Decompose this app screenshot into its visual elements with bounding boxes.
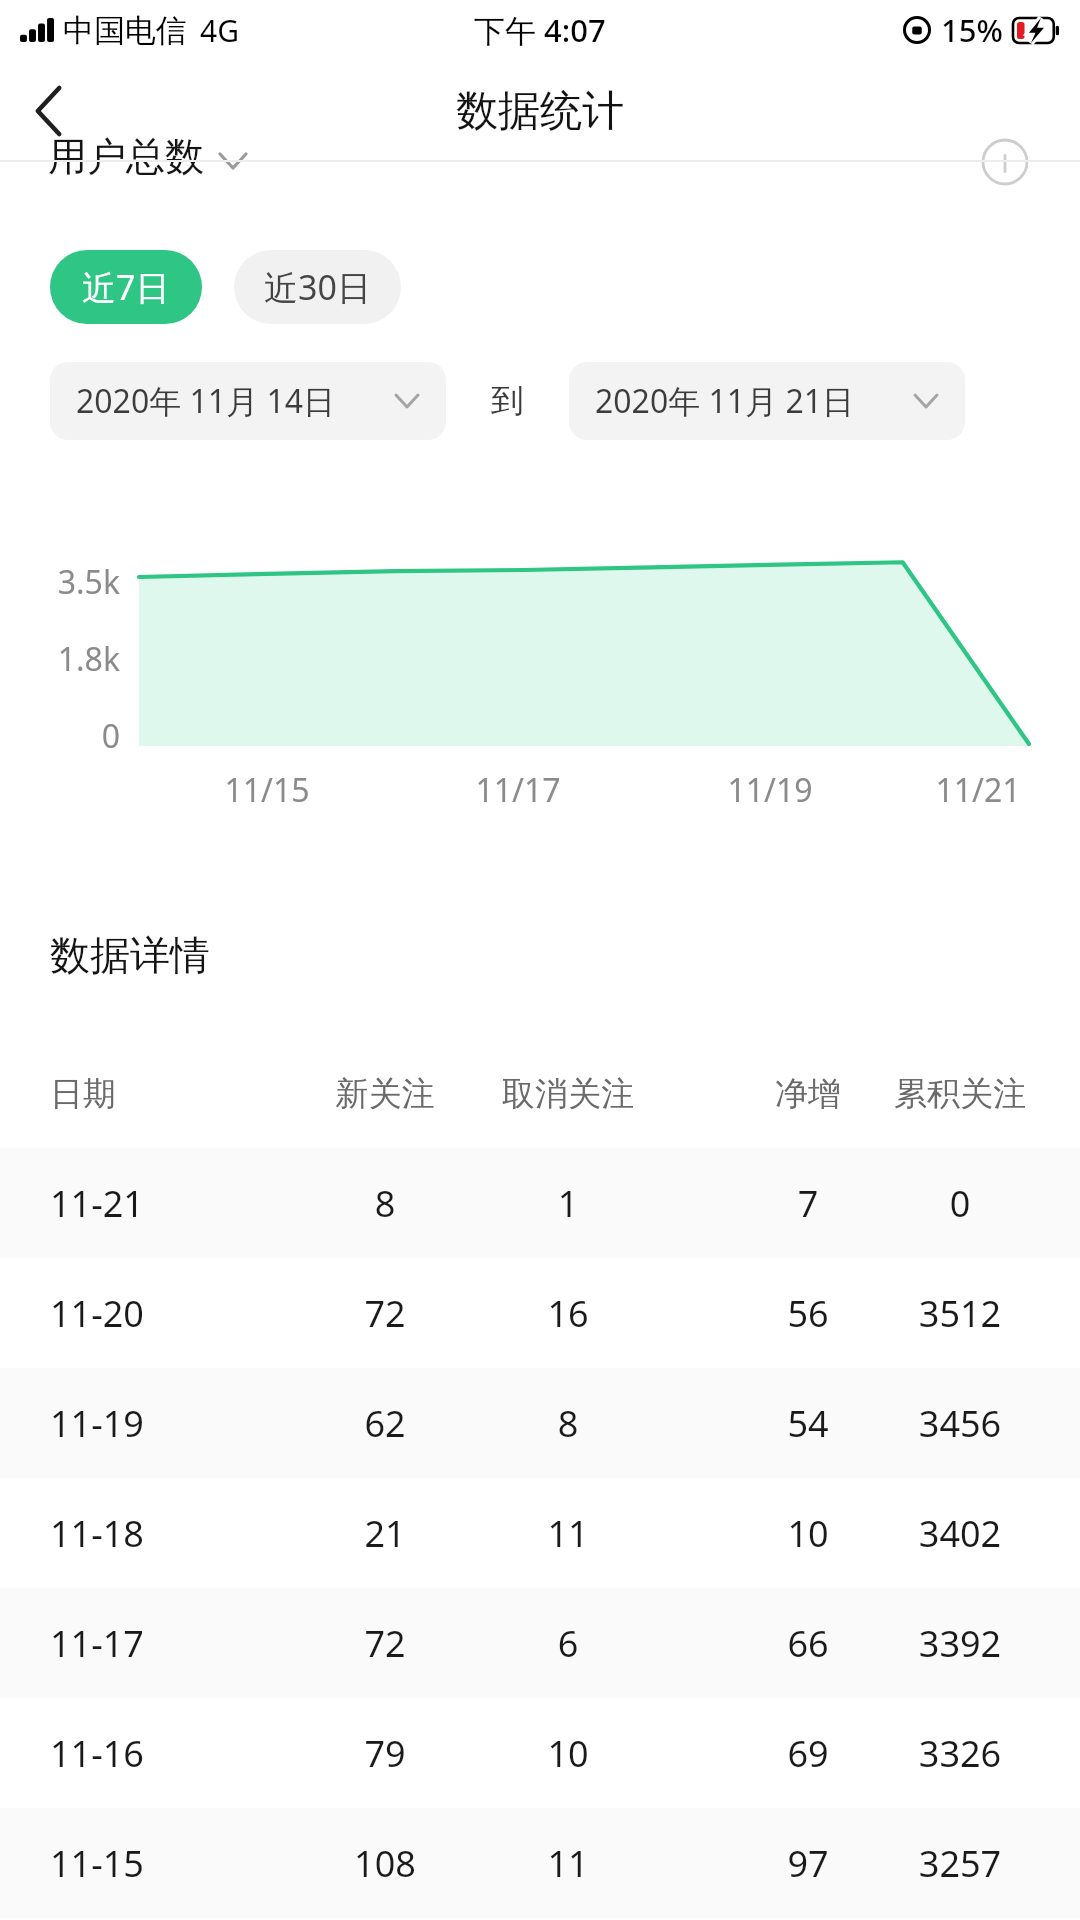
staticText: 1.8k bbox=[34, 637, 120, 681]
button[interactable]: 11-16 bbox=[0, 1698, 1080, 1808]
button[interactable]: 11-18 bbox=[0, 1478, 1080, 1588]
staticText: 日期 bbox=[50, 1073, 116, 1115]
staticText: 11-15 bbox=[50, 1839, 144, 1888]
staticText: 用户总数 bbox=[48, 132, 204, 181]
staticText: 8 bbox=[305, 1179, 465, 1228]
staticText: 3512 bbox=[880, 1289, 1040, 1338]
staticText: 7 bbox=[728, 1179, 888, 1228]
staticText: 6 bbox=[488, 1619, 648, 1668]
staticText: 108 bbox=[305, 1839, 465, 1888]
button[interactable]: 11-20 bbox=[0, 1258, 1080, 1368]
staticText: 11-18 bbox=[50, 1509, 144, 1558]
staticText: 11-17 bbox=[50, 1619, 144, 1668]
button[interactable]: Info bbox=[975, 132, 1035, 192]
button[interactable]: 11-21 bbox=[0, 1148, 1080, 1258]
staticText: 8 bbox=[488, 1399, 648, 1448]
staticText: 1 bbox=[488, 1179, 648, 1228]
button[interactable]: 近30日 bbox=[234, 250, 401, 324]
staticText: 4G bbox=[200, 10, 239, 51]
staticText: 10 bbox=[488, 1729, 648, 1778]
button[interactable]: 2020年 11月 14日 bbox=[50, 362, 446, 440]
staticText: 72 bbox=[305, 1289, 465, 1338]
staticText: 近30日 bbox=[264, 264, 371, 310]
staticText: 2020年 11月 21日 bbox=[595, 379, 855, 423]
staticText: 3257 bbox=[880, 1839, 1040, 1888]
staticText: 下午 4:07 bbox=[474, 9, 606, 51]
staticText: 新关注 bbox=[305, 1073, 465, 1115]
staticText: 56 bbox=[728, 1289, 888, 1338]
staticText: 66 bbox=[728, 1619, 888, 1668]
button[interactable]: 11-19 bbox=[0, 1368, 1080, 1478]
staticText: 10 bbox=[728, 1509, 888, 1558]
staticText: 79 bbox=[305, 1729, 465, 1778]
staticText: 中国电信 bbox=[63, 11, 187, 50]
staticText: 净增 bbox=[728, 1073, 888, 1115]
staticText: 3392 bbox=[880, 1619, 1040, 1668]
staticText: 0 bbox=[880, 1179, 1040, 1228]
staticText: 15% bbox=[941, 9, 1003, 51]
staticText: 数据统计 bbox=[456, 85, 624, 138]
staticText: 21 bbox=[305, 1509, 465, 1558]
staticText: 11/19 bbox=[690, 768, 850, 812]
staticText: 取消关注 bbox=[488, 1073, 648, 1115]
staticText: 累积关注 bbox=[880, 1073, 1040, 1115]
staticText: 69 bbox=[728, 1729, 888, 1778]
staticText: 11-21 bbox=[50, 1179, 144, 1228]
staticText: 11/15 bbox=[187, 768, 347, 812]
staticText: 近7日 bbox=[82, 264, 170, 310]
staticText: 11 bbox=[488, 1839, 648, 1888]
staticText: 到 bbox=[491, 380, 524, 422]
staticText: 11-19 bbox=[50, 1399, 144, 1448]
staticText: 11/17 bbox=[438, 768, 598, 812]
button[interactable]: 日期 bbox=[0, 1058, 1080, 1130]
staticText: 54 bbox=[728, 1399, 888, 1448]
button[interactable]: Back bbox=[0, 62, 98, 160]
staticText: 11-20 bbox=[50, 1289, 144, 1338]
staticText: 62 bbox=[305, 1399, 465, 1448]
staticText: 97 bbox=[728, 1839, 888, 1888]
button[interactable]: 11-15 bbox=[0, 1808, 1080, 1918]
staticText: 11/21 bbox=[898, 768, 1058, 812]
staticText: 3.5k bbox=[34, 560, 120, 604]
button[interactable]: 11-17 bbox=[0, 1588, 1080, 1698]
staticText: 16 bbox=[488, 1289, 648, 1338]
staticText: 数据详情 bbox=[50, 930, 210, 980]
staticText: 2020年 11月 14日 bbox=[76, 379, 336, 423]
staticText: 72 bbox=[305, 1619, 465, 1668]
staticText: 0 bbox=[34, 714, 120, 758]
staticText: 3326 bbox=[880, 1729, 1040, 1778]
button[interactable]: 近7日 bbox=[50, 250, 202, 324]
staticText: 11-16 bbox=[50, 1729, 144, 1778]
staticText: 3456 bbox=[880, 1399, 1040, 1448]
staticText: 3402 bbox=[880, 1509, 1040, 1558]
button[interactable]: 2020年 11月 21日 bbox=[569, 362, 965, 440]
staticText: 11 bbox=[488, 1509, 648, 1558]
